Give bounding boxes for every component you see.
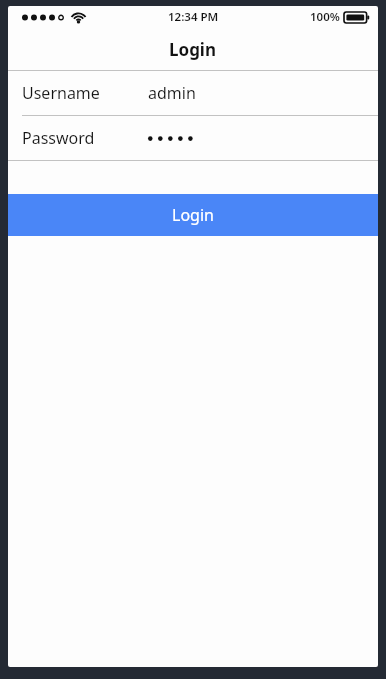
staticText: Login bbox=[172, 204, 214, 226]
button[interactable]: Password bbox=[8, 116, 378, 160]
button[interactable]: Login bbox=[8, 194, 378, 236]
button[interactable]: Username bbox=[8, 71, 378, 115]
staticText: Username bbox=[22, 82, 100, 104]
staticText: Login bbox=[169, 38, 217, 61]
staticText: 12:34 PM bbox=[168, 9, 219, 25]
staticText: Password bbox=[22, 127, 95, 149]
staticText: admin bbox=[148, 82, 196, 104]
staticText: 100% bbox=[310, 9, 340, 25]
